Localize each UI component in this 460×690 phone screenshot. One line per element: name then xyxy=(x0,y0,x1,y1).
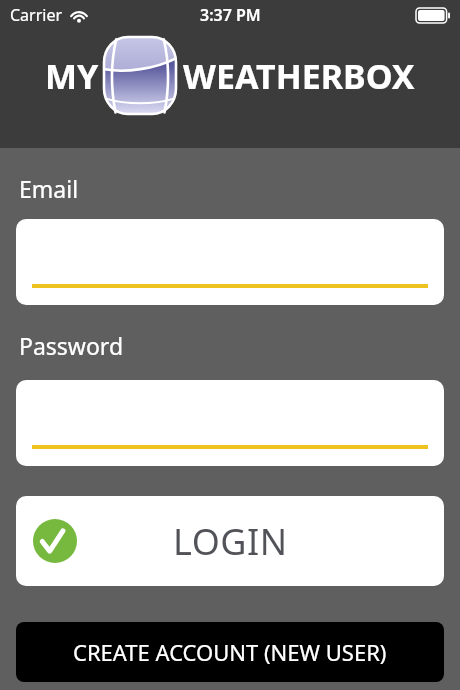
staticText: MY xyxy=(45,53,99,99)
staticText: Carrier xyxy=(10,4,63,26)
staticText: CREATE ACCOUNT (NEW USER) xyxy=(73,637,387,667)
staticText: Email xyxy=(19,173,79,204)
staticText: WEATHERBOX xyxy=(183,53,415,99)
button[interactable]: LOGIN xyxy=(16,496,444,586)
button[interactable] xyxy=(16,380,444,466)
button[interactable] xyxy=(16,219,444,305)
staticText: 3:37 PM xyxy=(200,4,261,26)
staticText: LOGIN xyxy=(173,517,288,566)
staticText: Password xyxy=(19,330,124,361)
button[interactable]: CREATE ACCOUNT (NEW USER) xyxy=(16,622,444,682)
